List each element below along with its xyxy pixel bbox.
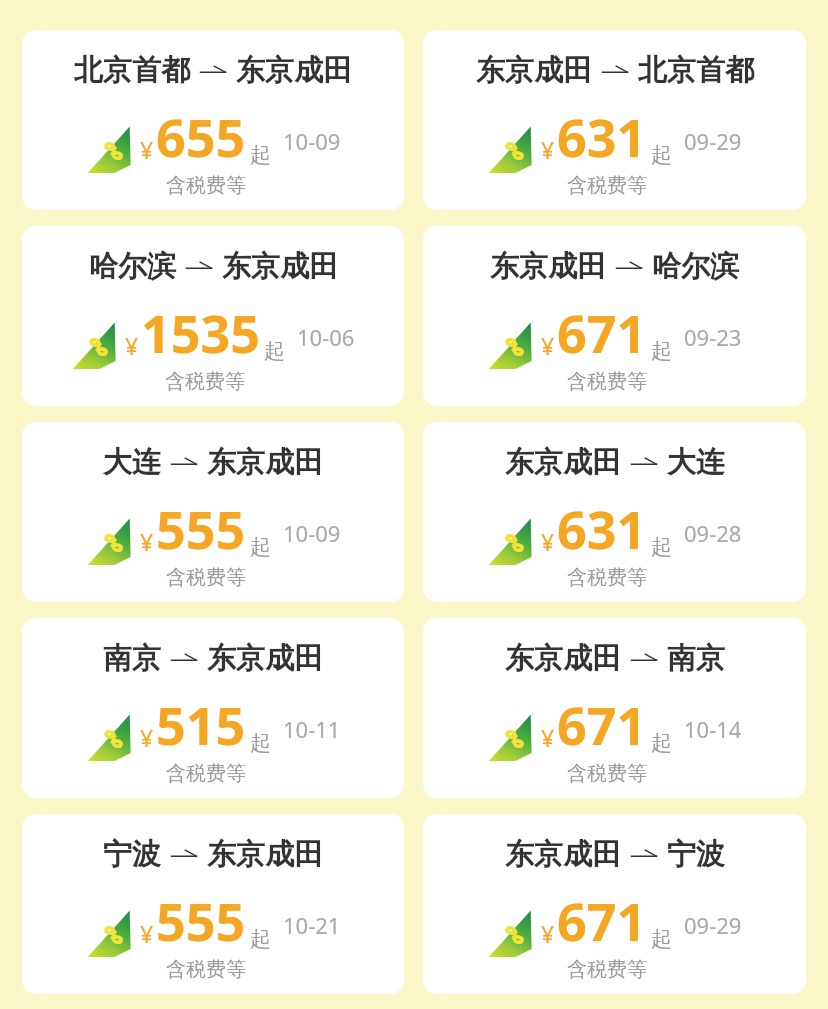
staticText: 含税费等 [567,173,647,198]
staticText: 起 [250,926,271,952]
staticText: 10-11 [283,714,341,744]
staticText: 宁波 [667,836,725,873]
staticText: 起 [250,142,271,168]
staticText: 起 [250,534,271,560]
button[interactable]: 宁波 [22,814,404,994]
staticText: 东京成田 [207,640,323,677]
staticText: 10-14 [684,714,742,744]
button[interactable]: 东京成田 [423,618,806,798]
staticText: 南京 [103,640,161,677]
staticText: ¥ [541,330,555,361]
staticText: 631 [557,101,647,172]
button[interactable]: 北京首都 [22,30,404,210]
button[interactable]: 东京成田 [423,226,806,406]
staticText: 含税费等 [567,957,647,982]
staticText: 东京成田 [207,444,323,481]
staticText: ¥ [140,722,154,753]
staticText: 含税费等 [567,761,647,786]
staticText: 东京成田 [222,248,338,285]
staticText: 宁波 [103,836,161,873]
staticText: ¥ [140,526,154,557]
button[interactable]: 大连 [22,422,404,602]
staticText: 东京成田 [505,444,621,481]
staticText: 东京成田 [476,52,592,89]
staticText: 含税费等 [165,369,245,394]
staticText: 671 [557,689,647,760]
staticText: 大连 [103,444,161,481]
staticText: ¥ [125,330,139,361]
staticText: 大连 [667,444,725,481]
staticText: 09-23 [684,322,742,352]
staticText: 含税费等 [166,565,246,590]
staticText: 东京成田 [207,836,323,873]
staticText: 起 [651,730,672,756]
staticText: 起 [250,730,271,756]
staticText: 10-09 [283,518,341,548]
staticText: 555 [156,493,246,564]
staticText: 东京成田 [490,248,606,285]
button[interactable]: 东京成田 [423,422,806,602]
staticText: 东京成田 [505,640,621,677]
staticText: 起 [264,338,285,364]
staticText: ¥ [541,526,555,557]
staticText: 含税费等 [567,565,647,590]
button[interactable]: 东京成田 [423,814,806,994]
staticText: 671 [557,297,647,368]
button[interactable]: 南京 [22,618,404,798]
staticText: ¥ [140,918,154,949]
staticText: 南京 [667,640,725,677]
staticText: ¥ [541,918,555,949]
staticText: 北京首都 [638,52,754,89]
staticText: 含税费等 [166,761,246,786]
staticText: 哈尔滨 [89,248,176,285]
staticText: 1535 [141,297,260,368]
button[interactable]: 东京成田 [423,30,806,210]
staticText: 515 [156,689,246,760]
staticText: 东京成田 [236,52,352,89]
staticText: 09-29 [684,910,742,940]
staticText: 655 [156,101,246,172]
staticText: 含税费等 [166,173,246,198]
staticText: 631 [557,493,647,564]
staticText: 起 [651,926,672,952]
staticText: 含税费等 [166,957,246,982]
staticText: 10-06 [297,322,355,352]
staticText: 哈尔滨 [652,248,739,285]
staticText: 起 [651,338,672,364]
staticText: 含税费等 [567,369,647,394]
staticText: ¥ [140,134,154,165]
staticText: ¥ [541,722,555,753]
staticText: 起 [651,534,672,560]
staticText: 10-21 [283,910,341,940]
staticText: 09-28 [684,518,742,548]
staticText: 起 [651,142,672,168]
staticText: 东京成田 [505,836,621,873]
staticText: 09-29 [684,126,742,156]
staticText: 671 [557,885,647,956]
staticText: 北京首都 [74,52,190,89]
button[interactable]: 哈尔滨 [22,226,404,406]
staticText: ¥ [541,134,555,165]
staticText: 10-09 [283,126,341,156]
staticText: 555 [156,885,246,956]
